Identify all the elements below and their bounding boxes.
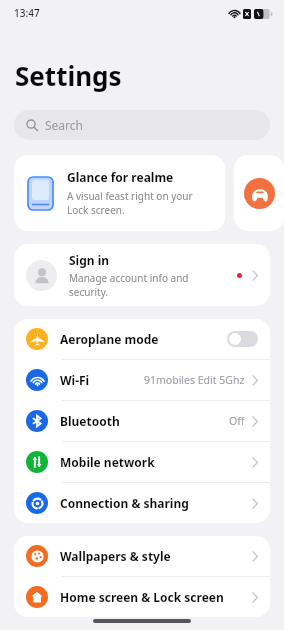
- staticText: Bluetooth: [60, 413, 120, 429]
- other: Wi-Fi: [229, 8, 240, 19]
- button[interactable]: Wallpapers & style: [14, 536, 270, 576]
- button[interactable]: Connection & sharing: [14, 483, 270, 523]
- button[interactable]: Glance for realme: [14, 155, 225, 231]
- staticText: Settings: [15, 58, 122, 93]
- staticText: Connection & sharing: [60, 495, 189, 511]
- button[interactable]: Game space: [234, 155, 284, 231]
- button[interactable]: Wi-Fi: [14, 360, 270, 400]
- button[interactable]: Search: [14, 110, 270, 140]
- button[interactable]: Home screen & Lock screen: [14, 577, 270, 617]
- staticText: A visual feast right on your Lock screen…: [67, 189, 193, 217]
- staticText: Glance for realme: [67, 169, 174, 185]
- staticText: Mobile network: [60, 454, 155, 470]
- staticText: Home screen & Lock screen: [60, 589, 224, 605]
- staticText: Wi-Fi: [60, 372, 90, 388]
- staticText: Wallpapers & style: [60, 548, 171, 564]
- staticText: Sign in: [69, 252, 110, 268]
- button[interactable]: Mobile network: [14, 442, 270, 482]
- staticText: 91mobiles Edit 5Ghz: [144, 373, 245, 387]
- button[interactable]: Bluetooth: [14, 401, 270, 441]
- staticText: Manage account info and security.: [69, 271, 189, 299]
- button[interactable]: Sign in: [14, 244, 270, 306]
- staticText: Search: [45, 117, 83, 133]
- staticText: 13:47: [14, 6, 40, 20]
- button[interactable]: Aeroplane mode toggle: [227, 331, 258, 347]
- staticText: Aeroplane mode: [60, 331, 159, 347]
- staticText: Off: [229, 414, 245, 428]
- button[interactable]: Aeroplane mode: [14, 319, 270, 359]
